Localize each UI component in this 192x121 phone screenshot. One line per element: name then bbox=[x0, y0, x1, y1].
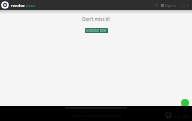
staticText: Sign in bbox=[165, 3, 177, 8]
staticText: www.rendezvous.app/meeting bbox=[71, 113, 122, 118]
button[interactable]: Chat bbox=[181, 99, 189, 107]
other: Open app bbox=[166, 113, 172, 119]
staticText: 9:41 AM bbox=[174, 114, 190, 119]
staticText: rendez bbox=[11, 3, 25, 8]
button[interactable]: SCHEDULE NOW bbox=[85, 28, 108, 33]
button[interactable]: Logo bbox=[1, 1, 9, 9]
staticText: vous bbox=[26, 3, 36, 8]
button[interactable]: Open app bbox=[166, 113, 190, 119]
staticText: ─ □ ✕ bbox=[179, 3, 190, 8]
button[interactable]: Help bbox=[155, 4, 158, 7]
staticText: SCHEDULE NOW bbox=[86, 29, 107, 33]
staticText: Don't miss it! bbox=[82, 16, 110, 22]
